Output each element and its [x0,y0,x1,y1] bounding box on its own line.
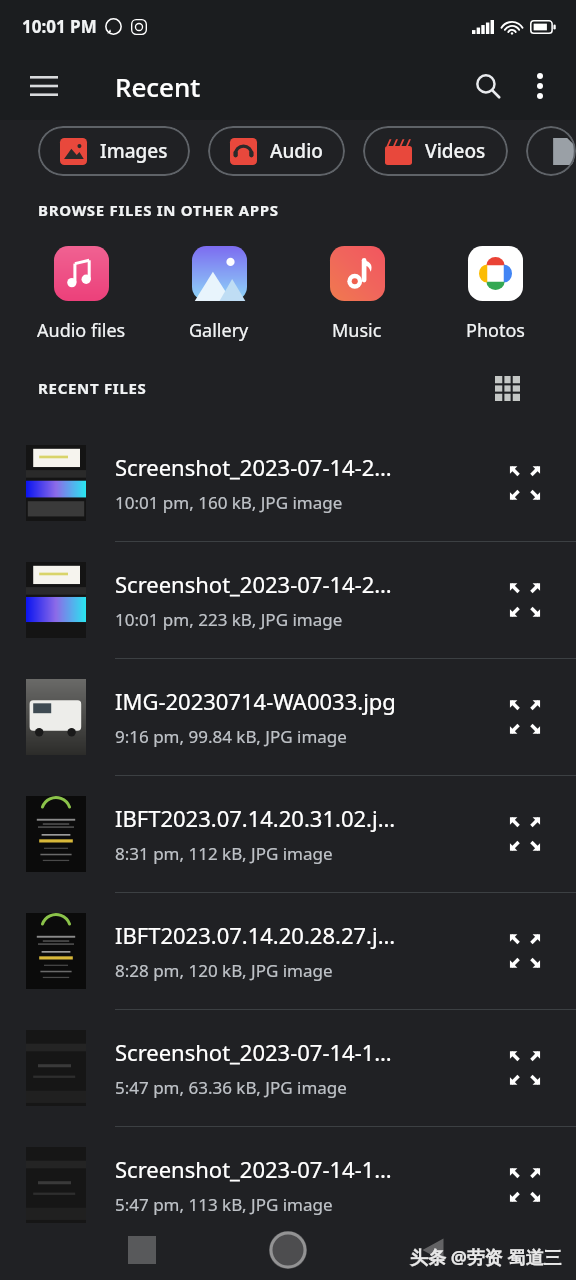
button[interactable]: Images [38,126,190,176]
staticText: Images [100,138,168,164]
button[interactable]: Gallery [150,242,288,347]
staticText: Gallery [189,318,249,343]
staticText: Photos [466,318,525,343]
button[interactable]: IBFT2023.07.14.20.28.27.j… [0,893,576,1009]
staticText: IBFT2023.07.14.20.28.27.j… [115,920,396,950]
button[interactable]: Audio files [12,242,150,347]
staticText: Recent [115,69,201,104]
button[interactable]: More options [514,60,566,112]
staticText: Videos [425,138,486,164]
staticText: Screenshot_2023-07-14-1… [115,1154,392,1184]
button[interactable]: Music [288,242,426,347]
button[interactable]: IBFT2023.07.14.20.31.02.j… [0,776,576,892]
button[interactable]: Videos [363,126,508,176]
staticText: Screenshot_2023-07-14-2… [115,452,392,482]
staticText: 10:01 pm, 223 kB, JPG image [115,608,343,631]
button[interactable]: Home [269,1231,307,1269]
staticText: 8:31 pm, 112 kB, JPG image [115,842,333,865]
button[interactable] [526,126,576,176]
staticText: Screenshot_2023-07-14-1… [115,1037,392,1067]
staticText: 5:47 pm, 113 kB, JPG image [115,1193,333,1216]
button[interactable]: Expand [496,454,554,512]
staticText: BROWSE FILES IN OTHER APPS [38,200,279,220]
button[interactable]: Audio [208,126,345,176]
staticText: 10:01 pm, 160 kB, JPG image [115,491,343,514]
staticText: 10:01 PM [22,15,97,38]
button[interactable]: Search [462,60,514,112]
button[interactable]: Back [418,1235,448,1265]
button[interactable]: Screenshot_2023-07-14-2… [0,425,576,541]
staticText: Audio files [37,318,126,343]
button[interactable]: Photos [426,242,564,347]
staticText: 头条 @劳资 蜀道三 [410,1245,562,1270]
staticText: Audio [270,138,323,164]
staticText: Screenshot_2023-07-14-2… [115,569,392,599]
button[interactable]: Open navigation menu [18,60,70,112]
staticText: IBFT2023.07.14.20.31.02.j… [115,803,396,833]
button[interactable]: Screenshot_2023-07-14-1… [0,1010,576,1126]
staticText: 9:16 pm, 99.84 kB, JPG image [115,725,347,748]
button[interactable]: Expand [496,922,554,980]
button[interactable]: Screenshot_2023-07-14-2… [0,542,576,658]
button[interactable]: Expand [496,1039,554,1097]
button[interactable]: Expand [496,571,554,629]
button[interactable]: Expand [496,1156,554,1214]
staticText: 8:28 pm, 120 kB, JPG image [115,959,333,982]
staticText: Music [332,318,382,343]
button[interactable]: IMG-20230714-WA0033.jpg [0,659,576,775]
button[interactable]: Expand [496,688,554,746]
button[interactable]: Screenshot_2023-07-14-1… [0,1127,576,1243]
staticText: IMG-20230714-WA0033.jpg [115,686,396,716]
button[interactable]: Expand [496,805,554,863]
button[interactable]: Switch to grid view [490,373,524,403]
staticText: 5:47 pm, 63.36 kB, JPG image [115,1076,347,1099]
staticText: RECENT FILES [38,378,147,398]
